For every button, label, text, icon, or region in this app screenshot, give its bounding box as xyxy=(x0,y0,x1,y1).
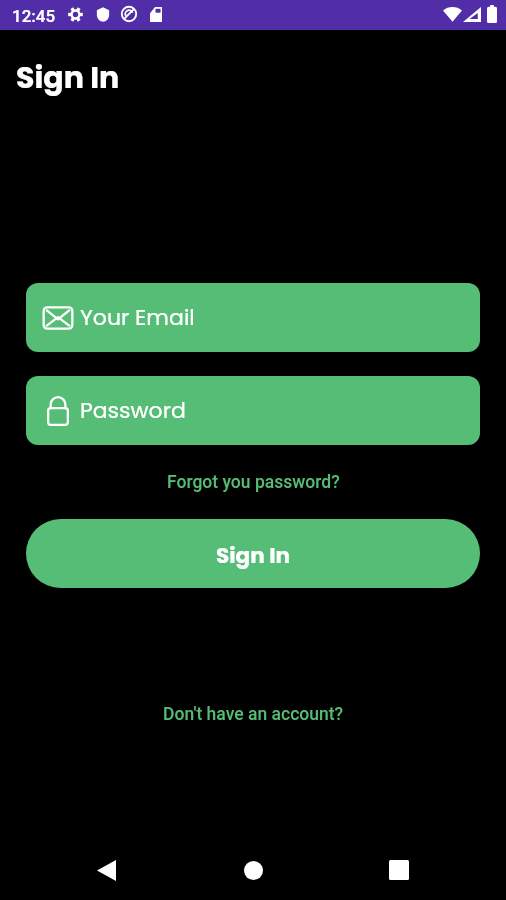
staticText: Your Email xyxy=(80,302,195,333)
button[interactable]: Password xyxy=(26,376,480,445)
staticText: Password xyxy=(80,395,186,426)
button[interactable]: Back xyxy=(82,846,130,894)
staticText: Sign In xyxy=(16,57,120,99)
button[interactable]: Recent apps xyxy=(375,846,423,894)
button[interactable]: Sign In xyxy=(26,519,480,588)
staticText: 12:45 xyxy=(12,6,56,26)
button[interactable]: Don't have an account? xyxy=(155,700,352,729)
button[interactable]: Forgot you password? xyxy=(159,468,348,497)
button[interactable]: Your Email xyxy=(26,283,480,352)
staticText: Sign In xyxy=(216,540,291,570)
button[interactable]: Home xyxy=(229,846,277,894)
